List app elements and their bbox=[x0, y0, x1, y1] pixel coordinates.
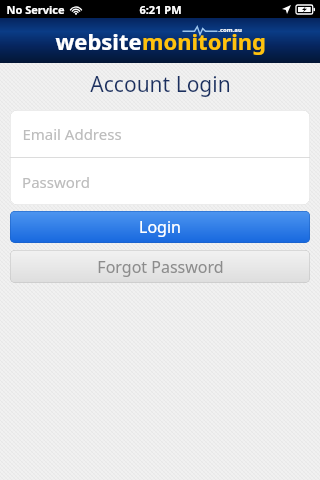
staticText: No Service bbox=[6, 2, 65, 17]
staticText: Password bbox=[22, 172, 90, 192]
staticText: website bbox=[55, 26, 142, 56]
staticText: 6:21 PM bbox=[139, 2, 182, 17]
staticText: Email Address bbox=[22, 124, 122, 144]
button[interactable]: Login bbox=[10, 211, 310, 243]
staticText: Login bbox=[139, 216, 181, 238]
button[interactable]: Password bbox=[10, 158, 310, 205]
staticText: Account Login bbox=[90, 70, 231, 99]
staticText: Forgot Password bbox=[97, 256, 224, 278]
staticText: .com.au bbox=[218, 26, 242, 34]
staticText: monitoring bbox=[142, 26, 266, 56]
button[interactable]: Email Address bbox=[10, 110, 310, 157]
button[interactable]: Forgot Password bbox=[10, 250, 310, 283]
